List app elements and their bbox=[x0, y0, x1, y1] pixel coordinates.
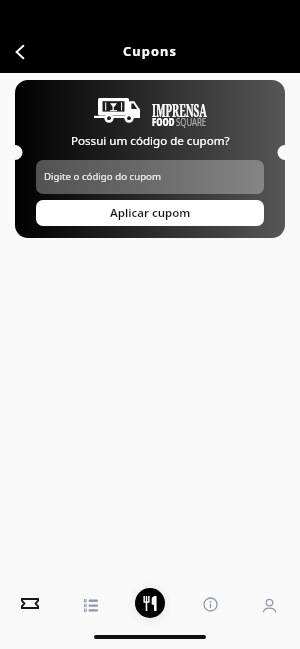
staticText: IMPRENSA bbox=[152, 98, 207, 123]
staticText: Cupons bbox=[123, 42, 177, 59]
staticText: FOOD bbox=[152, 114, 175, 129]
button[interactable]: Back bbox=[4, 36, 36, 68]
staticText: Possui um código de cupom? bbox=[71, 133, 230, 149]
staticText: Aplicar cupom bbox=[110, 205, 191, 221]
staticText: Digite o código do cupom bbox=[44, 170, 162, 183]
button[interactable]: Information bbox=[190, 584, 230, 624]
button[interactable]: Restaurants bbox=[135, 588, 165, 618]
button[interactable]: Aplicar cupom bbox=[36, 200, 264, 226]
button[interactable]: Digite o código do cupom bbox=[36, 160, 264, 194]
staticText: SQUARE bbox=[176, 114, 207, 129]
button[interactable]: Coupons bbox=[10, 583, 50, 623]
button[interactable]: Orders bbox=[71, 585, 111, 625]
button[interactable]: Profile bbox=[249, 585, 289, 625]
